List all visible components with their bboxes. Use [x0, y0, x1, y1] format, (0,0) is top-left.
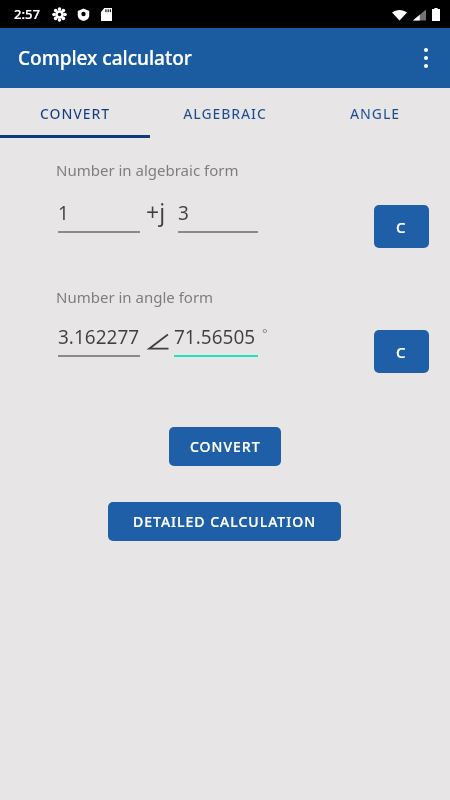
button[interactable]: ALGEBRAIC [150, 88, 300, 138]
button[interactable]: ANGLE [300, 88, 450, 138]
button[interactable]: 1 [58, 200, 140, 233]
staticText: C [396, 342, 407, 362]
staticText: C [396, 217, 407, 237]
staticText: 3 [178, 200, 189, 226]
staticText: Number in angle form [56, 287, 214, 307]
staticText: 2:57 [14, 5, 40, 23]
staticText: 1 [58, 200, 69, 226]
button[interactable]: C [374, 205, 429, 248]
staticText: ANGLE [350, 104, 400, 123]
button[interactable]: More options [402, 34, 450, 82]
button[interactable]: 71.56505 [174, 324, 258, 357]
staticText: ° [262, 324, 268, 342]
staticText: CONVERT [40, 104, 110, 123]
button[interactable]: CONVERT [169, 427, 281, 466]
staticText: +j [146, 196, 166, 227]
staticText: 3.162277 [58, 324, 140, 350]
button[interactable]: CONVERT [0, 88, 150, 138]
staticText: DETAILED CALCULATION [133, 512, 317, 531]
staticText: Complex calculator [18, 45, 192, 71]
staticText: 71.56505 [174, 324, 256, 350]
button[interactable]: 3 [178, 200, 258, 233]
button[interactable]: 3.162277 [58, 324, 140, 357]
button[interactable]: DETAILED CALCULATION [108, 502, 341, 541]
staticText: ALGEBRAIC [183, 104, 267, 123]
staticText: CONVERT [190, 437, 261, 456]
staticText: Number in algebraic form [56, 160, 239, 180]
button[interactable]: C [374, 330, 429, 373]
